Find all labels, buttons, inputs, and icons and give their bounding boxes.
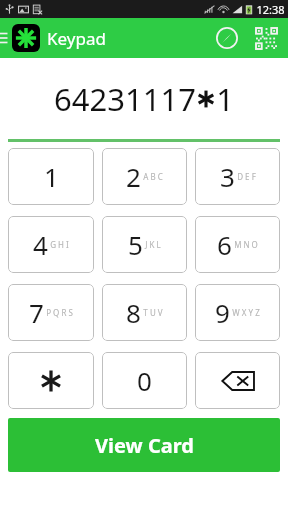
button[interactable]: Key 3: [195, 148, 280, 205]
staticText: 7: [29, 295, 44, 330]
button[interactable]: Key 1: [8, 148, 94, 205]
staticText: J K L: [145, 239, 161, 250]
button[interactable]: Key 0: [102, 352, 187, 409]
staticText: View Card: [95, 432, 194, 459]
staticText: Keypad: [47, 27, 106, 50]
staticText: A B C: [143, 171, 163, 182]
button[interactable]: Key 4: [8, 216, 94, 273]
button[interactable]: Key 7: [8, 284, 94, 341]
button[interactable]: Key 6: [195, 216, 280, 273]
staticText: W X Y Z: [232, 307, 260, 318]
staticText: 12:38: [256, 2, 285, 17]
staticText: T U V: [143, 307, 163, 318]
staticText: 8: [126, 295, 141, 330]
staticText: G H I: [50, 239, 69, 250]
button[interactable]: Menu: [0, 18, 10, 58]
staticText: 3: [220, 159, 235, 194]
staticText: P Q R S: [46, 307, 73, 318]
staticText: 6: [217, 227, 232, 262]
button[interactable]: Key 2: [102, 148, 187, 205]
button[interactable]: Scan QR code: [246, 18, 286, 58]
staticText: 9: [215, 295, 230, 330]
staticText: 4: [33, 227, 48, 262]
button[interactable]: Star: [8, 352, 94, 409]
staticText: 1: [216, 78, 234, 120]
button[interactable]: View Card: [8, 418, 280, 472]
staticText: D E F: [237, 171, 256, 182]
staticText: 5: [128, 227, 143, 262]
button[interactable]: Key 8: [102, 284, 187, 341]
button[interactable]: Backspace: [195, 352, 280, 409]
staticText: 2: [126, 159, 141, 194]
button[interactable]: Key 9: [195, 284, 280, 341]
button[interactable]: Key 5: [102, 216, 187, 273]
staticText: 64231117: [54, 78, 196, 120]
staticText: 1: [44, 159, 59, 194]
staticText: 0: [137, 363, 152, 398]
staticText: M N O: [234, 239, 258, 250]
button[interactable]: Explore: [208, 19, 246, 57]
